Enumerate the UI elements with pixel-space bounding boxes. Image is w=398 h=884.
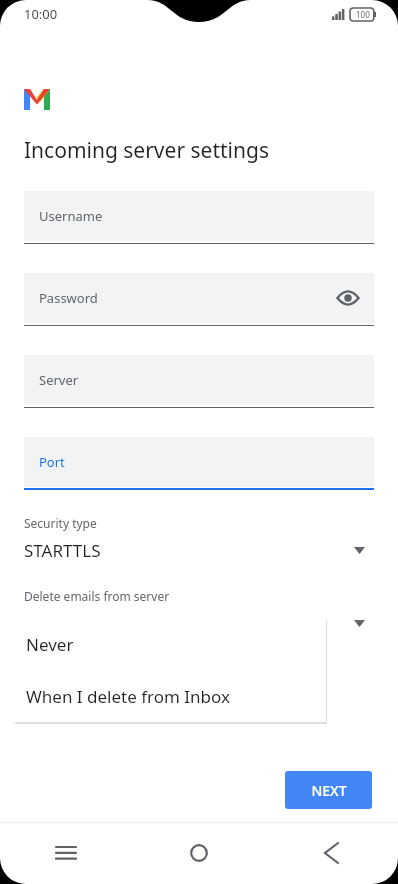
button[interactable]: NEXT [285,771,372,809]
button[interactable]: Show password [334,284,362,312]
staticText: NEXT [311,781,347,800]
staticText: 100 [356,9,370,20]
staticText: Delete emails from server [24,588,170,604]
staticText: STARTTLS [24,539,354,562]
button[interactable]: Username [24,191,374,244]
staticText: Password [39,289,98,307]
staticText: Server [39,371,79,389]
button[interactable]: Password [24,273,374,326]
staticText: Incoming server settings [24,136,269,165]
button[interactable]: Port [24,437,374,490]
button[interactable]: Never [14,618,326,670]
button[interactable]: Delete emails from server [24,588,374,635]
staticText: When I delete from Inbox [26,685,230,708]
button[interactable]: Back [265,822,398,884]
button[interactable]: When I delete from Inbox [14,670,326,722]
staticText: Never [26,633,74,656]
button[interactable]: Server [24,355,374,408]
button[interactable]: Security type [24,515,374,562]
staticText: Security type [24,515,97,531]
button[interactable]: Recent apps [0,822,132,884]
staticText: 10:00 [24,5,58,23]
staticText: Username [39,207,103,225]
staticText: Port [39,453,65,471]
button[interactable]: Home [132,822,265,884]
